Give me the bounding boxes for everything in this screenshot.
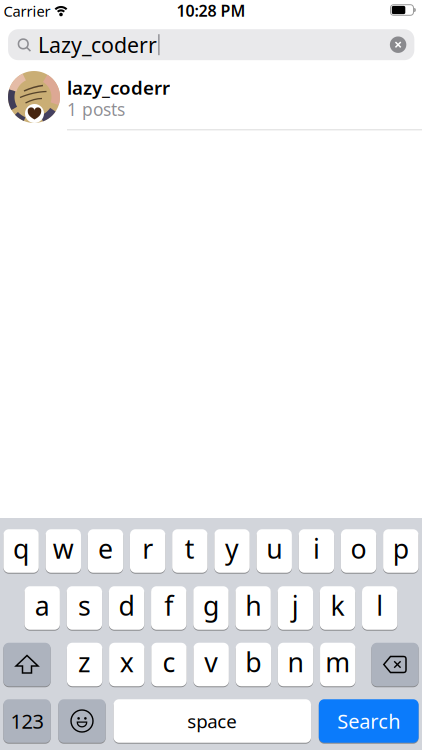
button[interactable]: q xyxy=(3,529,39,573)
staticText: 123 xyxy=(10,708,43,734)
button[interactable]: f xyxy=(151,586,186,630)
staticText: r xyxy=(142,531,153,566)
button[interactable]: h xyxy=(235,586,271,630)
staticText: p xyxy=(393,531,409,566)
button[interactable]: d xyxy=(109,586,144,630)
button[interactable]: p xyxy=(383,529,418,573)
staticText: lazy_coderr xyxy=(67,75,170,100)
button[interactable]: c xyxy=(151,642,187,687)
button[interactable]: Numbers xyxy=(3,699,51,743)
button[interactable]: a xyxy=(24,586,60,630)
button[interactable]: Shift xyxy=(3,642,51,687)
button[interactable]: Clear text xyxy=(390,36,406,53)
staticText: v xyxy=(204,644,218,680)
button[interactable]: Search xyxy=(319,699,419,743)
button[interactable]: e xyxy=(88,529,123,573)
staticText: Lazy_coderr xyxy=(38,30,157,59)
staticText: 1 posts xyxy=(67,98,125,121)
button[interactable]: b xyxy=(236,642,271,687)
staticText: k xyxy=(330,588,344,623)
button[interactable]: l xyxy=(362,586,397,630)
button[interactable]: u xyxy=(256,529,292,573)
staticText: u xyxy=(266,531,282,566)
staticText: m xyxy=(325,644,350,680)
staticText: f xyxy=(164,588,173,623)
button[interactable]: s xyxy=(67,586,102,630)
button[interactable]: o xyxy=(341,529,376,573)
staticText: x xyxy=(120,644,134,680)
button[interactable]: t xyxy=(172,529,208,573)
button[interactable]: z xyxy=(67,642,102,687)
staticText: j xyxy=(292,588,299,623)
staticText: l xyxy=(376,588,383,623)
staticText: b xyxy=(245,644,261,680)
staticText: q xyxy=(13,531,29,566)
button[interactable]: w xyxy=(46,529,81,573)
button[interactable]: n xyxy=(278,642,313,687)
staticText: o xyxy=(351,531,367,566)
staticText: Search xyxy=(337,708,400,734)
button[interactable]: space xyxy=(114,699,311,743)
staticText: d xyxy=(119,588,135,623)
button[interactable]: x xyxy=(109,642,144,687)
button[interactable]: j xyxy=(278,586,313,630)
button[interactable]: r xyxy=(130,529,165,573)
button[interactable]: g xyxy=(193,586,229,630)
button[interactable]: y xyxy=(214,529,250,573)
button[interactable]: Delete xyxy=(371,642,419,687)
staticText: y xyxy=(225,531,239,566)
button[interactable]: Emoji xyxy=(58,699,106,743)
staticText: c xyxy=(162,644,175,680)
staticText: n xyxy=(287,644,303,680)
staticText: w xyxy=(53,531,74,566)
button[interactable]: lazy_coderr xyxy=(0,66,422,128)
button[interactable]: i xyxy=(299,529,334,573)
staticText: e xyxy=(98,531,113,566)
button[interactable]: v xyxy=(193,642,229,687)
staticText: z xyxy=(78,644,91,680)
staticText: s xyxy=(78,588,91,623)
staticText: space xyxy=(187,709,237,733)
staticText: t xyxy=(185,531,195,566)
button[interactable]: m xyxy=(320,642,355,687)
staticText: Carrier xyxy=(3,1,50,21)
button[interactable]: k xyxy=(320,586,355,630)
staticText: g xyxy=(203,588,219,623)
staticText: i xyxy=(313,531,320,566)
staticText: a xyxy=(35,588,50,623)
staticText: h xyxy=(245,588,261,623)
staticText: 10:28 PM xyxy=(176,0,245,21)
